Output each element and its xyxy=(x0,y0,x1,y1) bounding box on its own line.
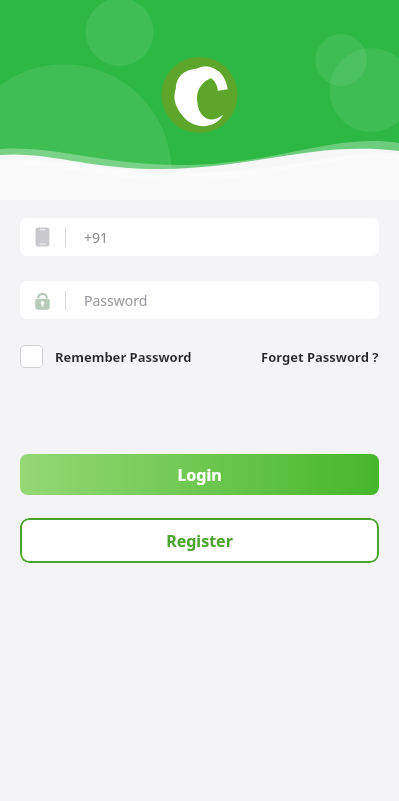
staticText: +91 xyxy=(84,228,109,247)
button[interactable]: Phone xyxy=(20,218,379,256)
button[interactable]: Forget Password ? xyxy=(261,348,379,366)
button[interactable]: Login xyxy=(20,454,379,495)
button[interactable]: Remember Password xyxy=(20,345,192,368)
staticText: Password xyxy=(84,291,148,310)
staticText: Login xyxy=(177,464,222,486)
button[interactable]: Password xyxy=(20,281,379,319)
button[interactable]: Register xyxy=(20,518,379,563)
other: Password xyxy=(34,289,51,311)
other: Phone xyxy=(34,226,51,248)
staticText: Remember Password xyxy=(55,348,192,366)
staticText: Forget Password ? xyxy=(261,348,379,366)
staticText: Register xyxy=(166,530,233,552)
